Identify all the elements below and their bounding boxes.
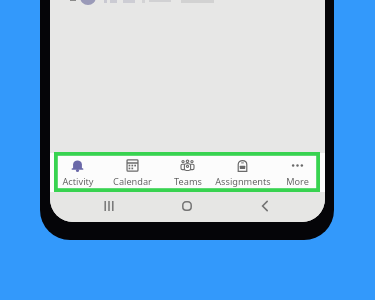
button[interactable]: Assignments (215, 153, 270, 192)
staticText: Calendar (113, 175, 152, 188)
staticText: Assignments (215, 175, 270, 188)
button[interactable]: Back (260, 201, 270, 211)
button[interactable]: More (270, 153, 325, 192)
staticText: Teams (174, 175, 202, 188)
staticText: Activity (62, 175, 94, 188)
button[interactable]: Recent apps (104, 201, 114, 211)
button[interactable]: Teams (160, 153, 215, 192)
button[interactable]: Home (182, 201, 192, 211)
button[interactable]: Calendar (105, 153, 160, 192)
button[interactable]: Activity (50, 153, 105, 192)
staticText: More (286, 175, 309, 188)
